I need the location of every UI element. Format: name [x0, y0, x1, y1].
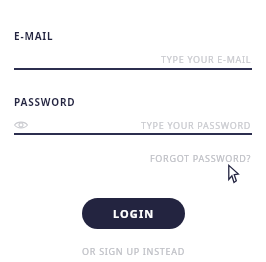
button[interactable]: OR SIGN UP INSTEAD: [78, 243, 189, 259]
button[interactable]: LOGIN: [82, 198, 185, 229]
staticText: FORGOT PASSWORD?: [150, 152, 252, 164]
staticText: TYPE YOUR E-MAIL: [161, 53, 252, 65]
button[interactable]: Show password: [14, 118, 252, 132]
staticText: PASSWORD: [14, 95, 76, 109]
button[interactable]: FORGOT PASSWORD?: [150, 150, 252, 166]
staticText: OR SIGN UP INSTEAD: [82, 245, 185, 257]
button[interactable]: TYPE YOUR E-MAIL: [14, 53, 252, 65]
button[interactable]: Show password: [14, 118, 32, 132]
staticText: LOGIN: [113, 206, 155, 221]
staticText: E-MAIL: [14, 29, 54, 43]
staticText: TYPE YOUR PASSWORD: [141, 119, 252, 131]
